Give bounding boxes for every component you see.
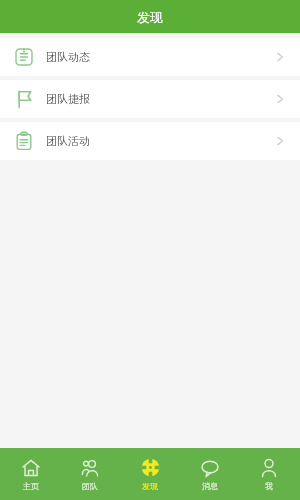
button[interactable]: 发现 bbox=[121, 448, 179, 500]
button[interactable]: 消息 bbox=[181, 448, 239, 500]
button[interactable]: 团队 bbox=[61, 448, 119, 500]
staticText: 团队活动 bbox=[46, 134, 90, 148]
button[interactable]: 团队活动 bbox=[0, 122, 300, 160]
staticText: 发现 bbox=[142, 481, 158, 491]
button[interactable]: 团队动态 bbox=[0, 38, 300, 76]
staticText: 团队捷报 bbox=[46, 92, 90, 106]
staticText: 我 bbox=[265, 481, 273, 491]
staticText: 发现 bbox=[137, 9, 163, 25]
button[interactable]: 团队捷报 bbox=[0, 80, 300, 118]
staticText: 团队 bbox=[82, 481, 98, 491]
staticText: 主页 bbox=[23, 481, 39, 491]
staticText: 团队动态 bbox=[46, 50, 90, 64]
button[interactable]: 我 bbox=[240, 448, 298, 500]
button[interactable]: 主页 bbox=[2, 448, 60, 500]
staticText: 消息 bbox=[202, 481, 218, 491]
